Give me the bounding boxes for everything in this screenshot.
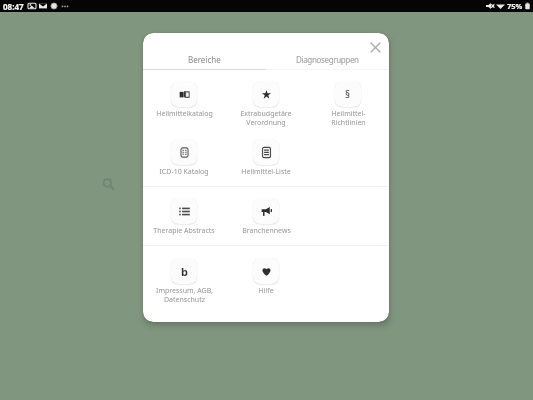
staticText: § <box>345 87 351 101</box>
staticText: Heilmittel- Richtlinien <box>331 109 366 127</box>
button[interactable]: Bereiche <box>143 33 266 70</box>
staticText: Diagnosegruppen <box>296 54 359 65</box>
staticText: ICD-10 Katalog <box>159 167 209 177</box>
staticText: Impressum, AGB, Datenschutz <box>156 286 213 304</box>
staticText: Heilmittelkatalog <box>156 109 213 119</box>
staticText: Therapie Abstracts <box>153 226 215 236</box>
button[interactable]: Heilmittel-Liste <box>225 135 307 177</box>
button[interactable]: ICD-10 Katalog <box>143 135 225 177</box>
staticText: Hilfe <box>258 286 274 296</box>
button[interactable]: Therapie Abstracts <box>143 194 225 236</box>
button[interactable]: Heilmittelkatalog <box>143 77 225 119</box>
button[interactable]: b <box>143 254 225 304</box>
staticText: Extrabudgetäre Verordnung <box>240 109 292 127</box>
button[interactable]: Extrabudgetäre Verordnung <box>225 77 307 127</box>
button[interactable]: Schließen <box>366 38 385 57</box>
staticText: Bereiche <box>188 54 221 65</box>
button[interactable]: Diagnosegruppen <box>266 33 389 70</box>
button[interactable]: Hilfe <box>225 254 307 296</box>
staticText: 75% <box>507 1 523 11</box>
staticText: 08:47 <box>3 1 24 12</box>
button[interactable]: § <box>307 77 389 127</box>
staticText: b <box>181 264 188 279</box>
staticText: Branchennews <box>242 226 291 236</box>
staticText: Heilmittel-Liste <box>241 167 291 177</box>
button[interactable]: Branchennews <box>225 194 307 236</box>
